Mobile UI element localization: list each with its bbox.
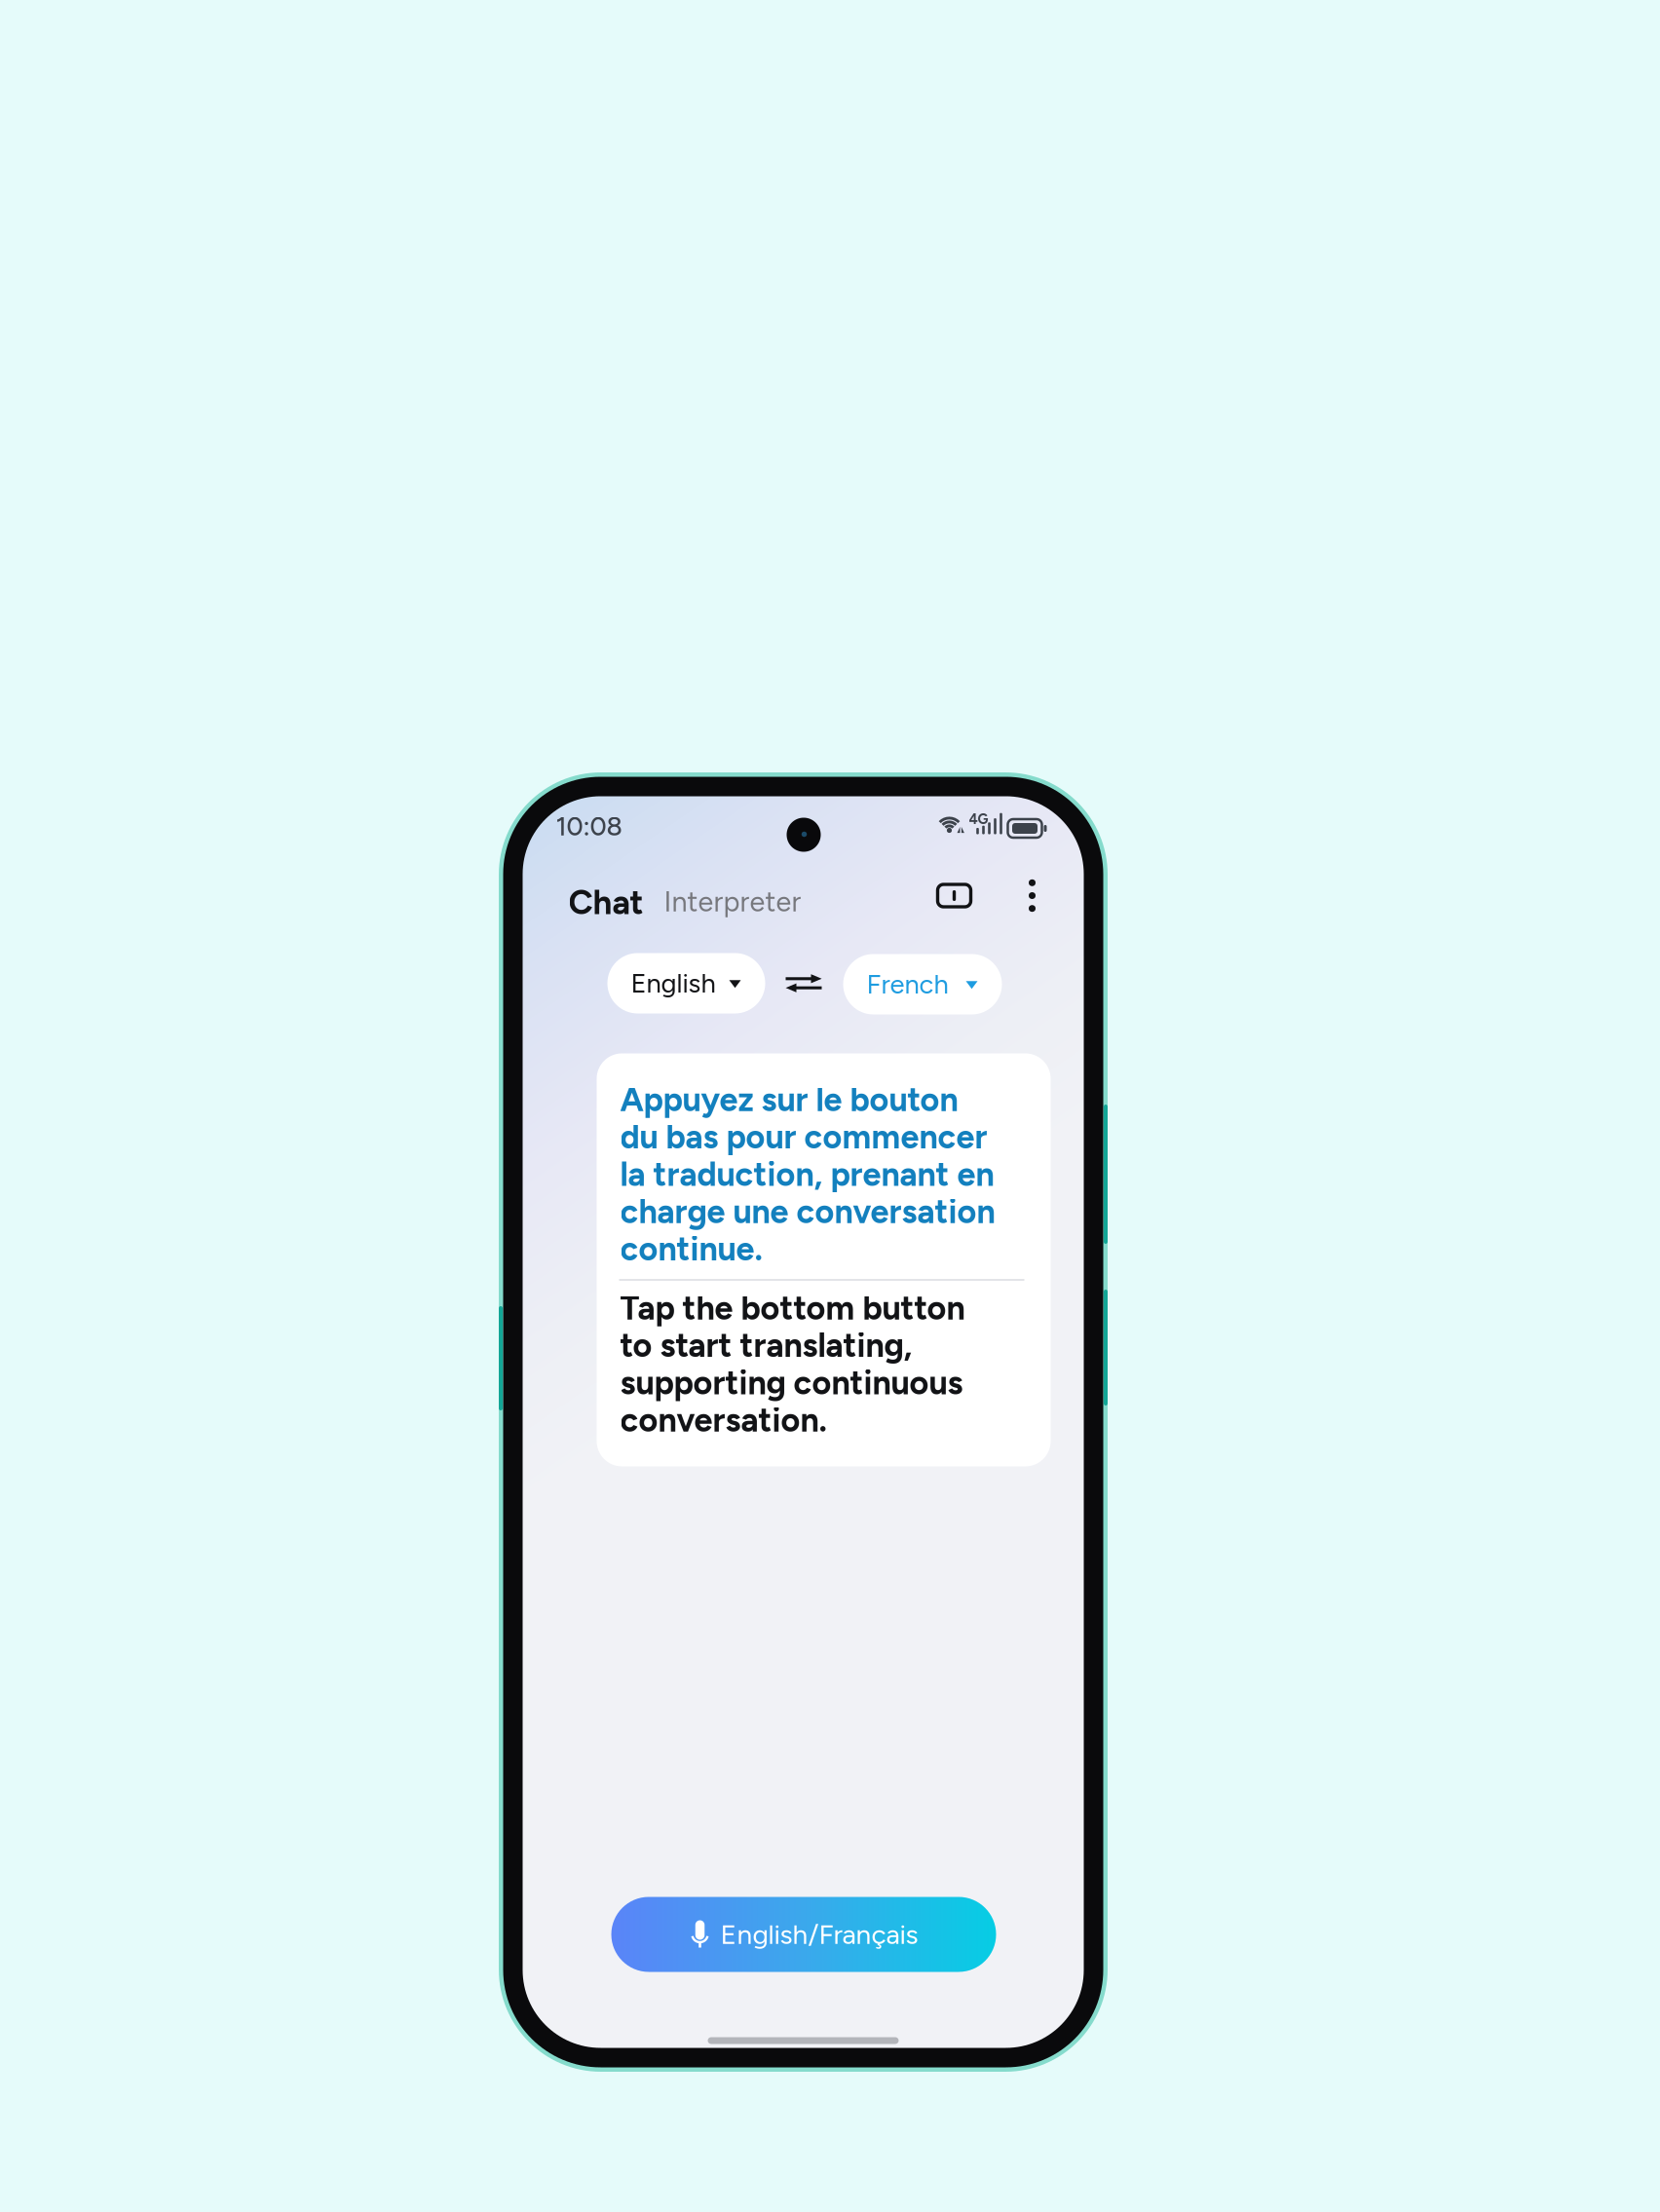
button[interactable]: More options bbox=[523, 796, 1084, 2048]
staticText: Chat bbox=[568, 882, 643, 922]
staticText: Appuyez sur le bouton du bas pour commen… bbox=[620, 1080, 995, 1269]
button[interactable]: English/Français bbox=[611, 1897, 996, 1972]
staticText: Interpreter bbox=[664, 885, 801, 918]
staticText: Tap the bottom button to start translati… bbox=[620, 1288, 965, 1440]
button[interactable]: Swap languages bbox=[765, 953, 842, 1013]
staticText: 10:08 bbox=[556, 811, 622, 842]
staticText: English/Français bbox=[720, 1918, 918, 1951]
button[interactable]: English bbox=[607, 953, 765, 1013]
staticText: French bbox=[867, 968, 948, 1000]
button[interactable]: French bbox=[843, 954, 1002, 1014]
staticText: 4G bbox=[969, 810, 988, 828]
staticText: English bbox=[631, 967, 716, 999]
button[interactable]: Split view bbox=[523, 796, 1084, 2048]
